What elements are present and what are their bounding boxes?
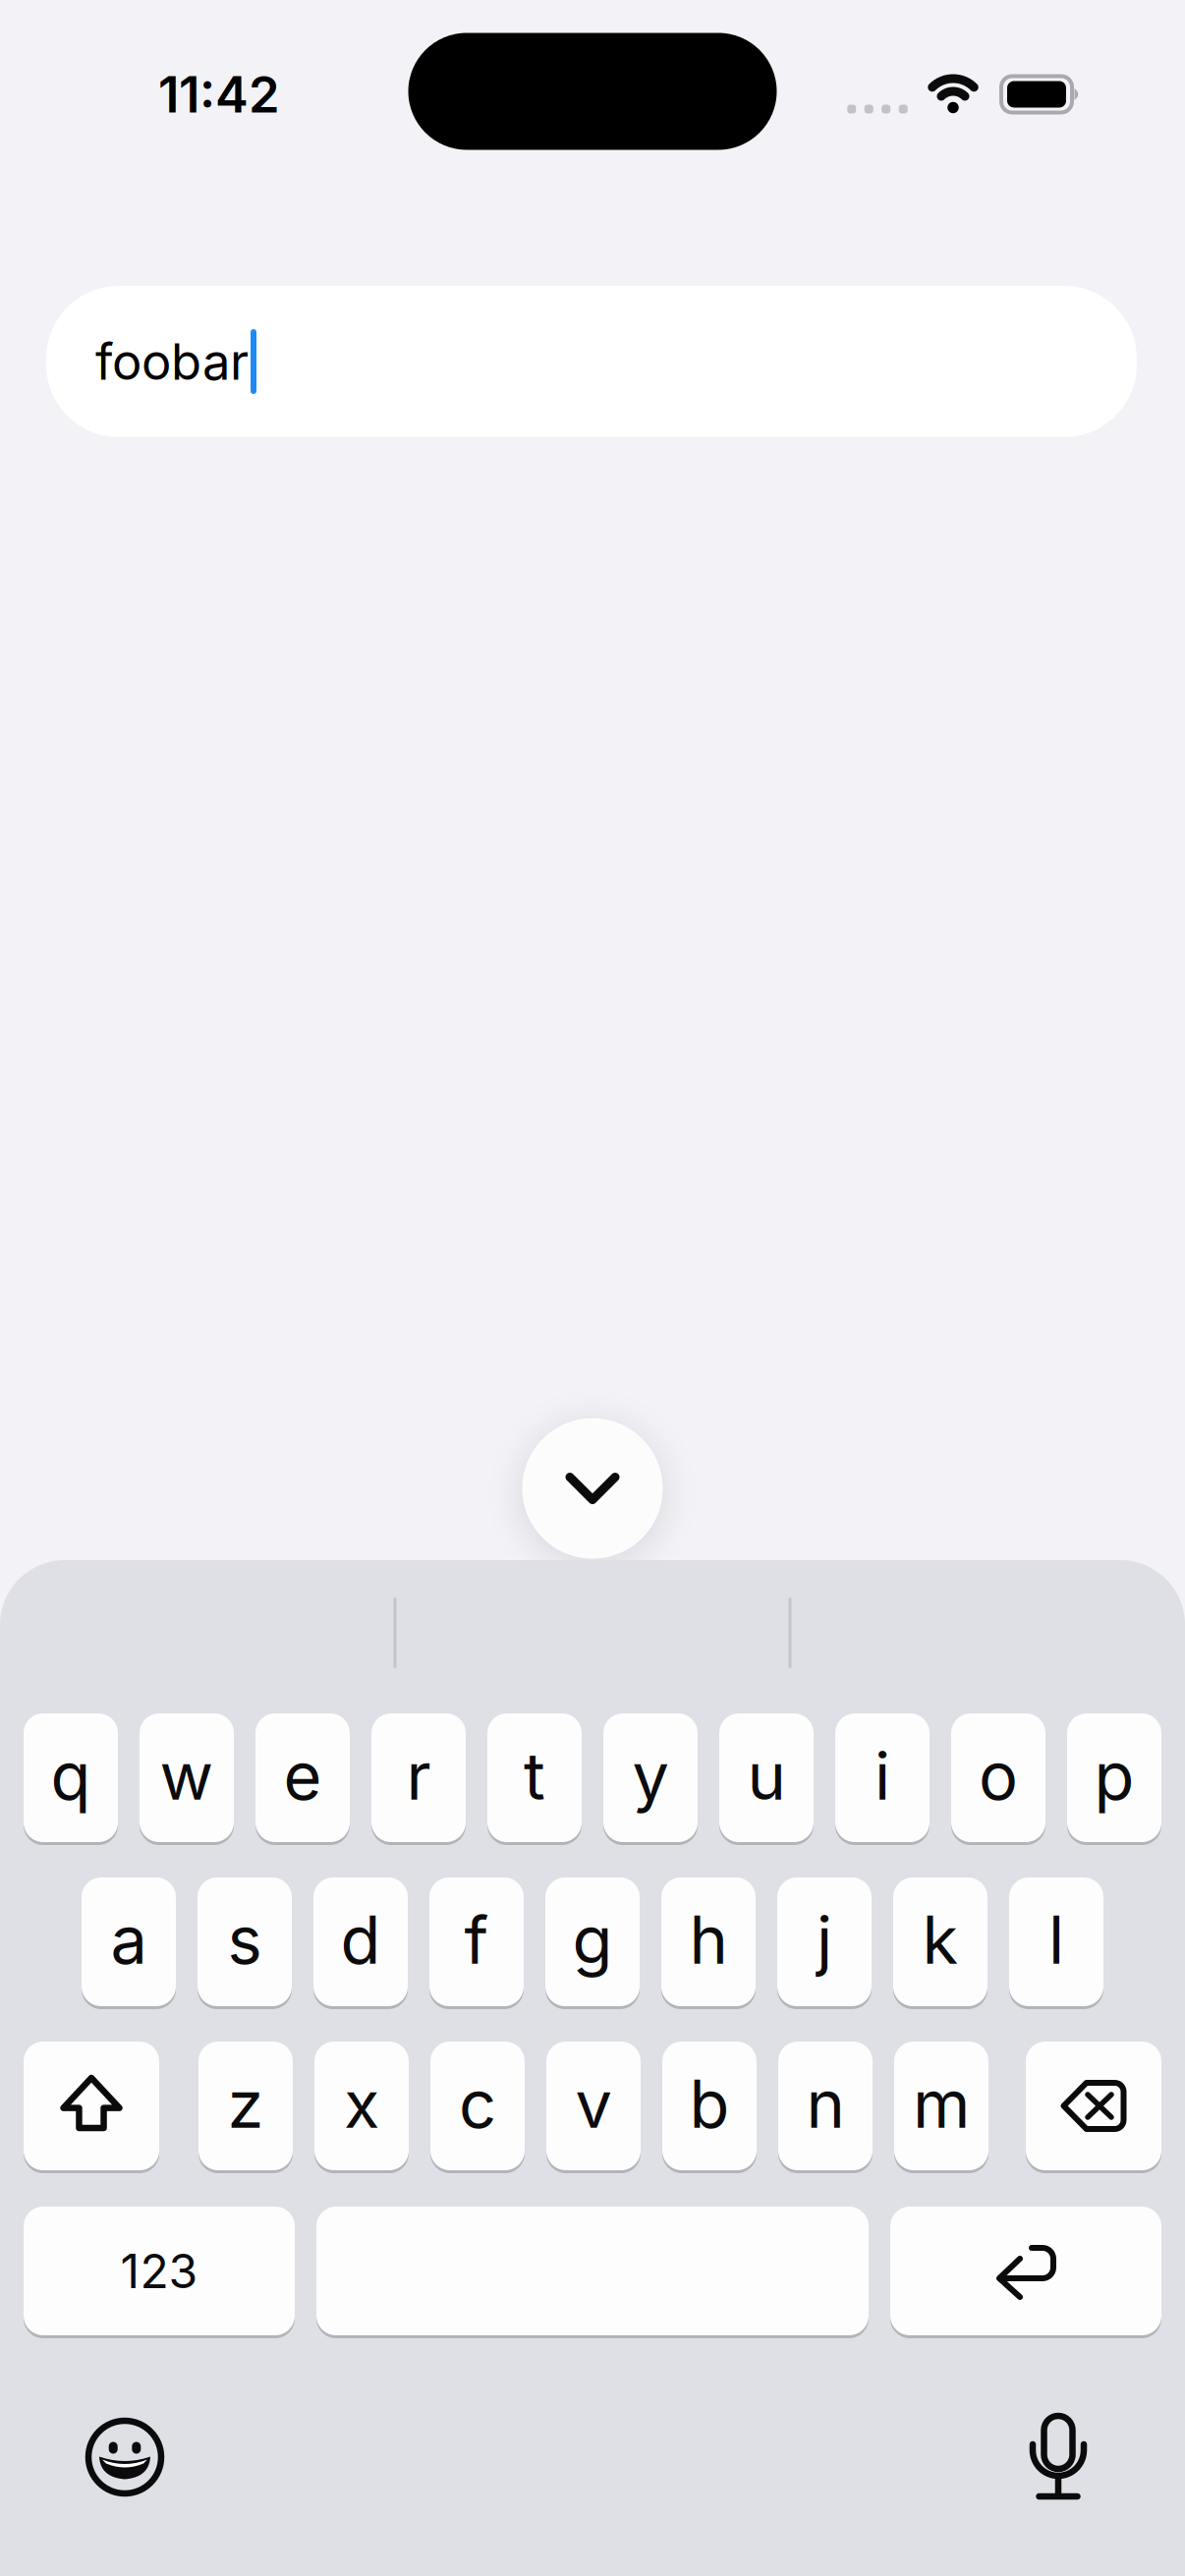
button[interactable]: Delete: [1026, 2040, 1161, 2172]
staticText: foobar: [95, 332, 249, 391]
button[interactable]: i: [835, 1712, 930, 1844]
staticText: x: [344, 2065, 379, 2143]
button[interactable]: Numbers: [24, 2205, 295, 2337]
button[interactable]: j: [777, 1876, 872, 2008]
button[interactable]: n: [778, 2040, 873, 2172]
button[interactable]: Shift: [24, 2040, 159, 2172]
button[interactable]: t: [487, 1712, 582, 1844]
button[interactable]: space: [316, 2205, 869, 2337]
staticText: u: [747, 1737, 786, 1814]
button[interactable]: r: [371, 1712, 466, 1844]
staticText: y: [632, 1737, 669, 1814]
staticText: o: [979, 1737, 1018, 1814]
staticText: i: [875, 1737, 890, 1814]
button[interactable]: Return: [890, 2205, 1161, 2337]
button[interactable]: s: [197, 1876, 292, 2008]
staticText: v: [575, 2065, 612, 2143]
button[interactable]: g: [545, 1876, 640, 2008]
button[interactable]: x: [314, 2040, 409, 2172]
staticText: e: [283, 1737, 322, 1814]
button[interactable]: d: [313, 1876, 408, 2008]
staticText: j: [817, 1901, 832, 1978]
staticText: h: [689, 1901, 728, 1978]
staticText: s: [227, 1901, 262, 1978]
staticText: m: [913, 2065, 970, 2143]
staticText: n: [806, 2065, 845, 2143]
button[interactable]: e: [255, 1712, 350, 1844]
button[interactable]: w: [140, 1712, 234, 1844]
staticText: q: [51, 1737, 91, 1814]
staticText: l: [1048, 1901, 1064, 1978]
button[interactable]: l: [1009, 1876, 1103, 2008]
staticText: 11:42: [158, 65, 280, 124]
staticText: a: [111, 1901, 147, 1978]
staticText: k: [922, 1901, 959, 1978]
staticText: f: [464, 1901, 489, 1978]
staticText: c: [459, 2065, 496, 2143]
button[interactable]: Dictate: [1009, 2407, 1107, 2505]
button[interactable]: h: [661, 1876, 756, 2008]
button[interactable]: b: [662, 2040, 757, 2172]
staticText: p: [1094, 1737, 1134, 1814]
button[interactable]: m: [894, 2040, 988, 2172]
button[interactable]: o: [951, 1712, 1045, 1844]
staticText: w: [160, 1737, 214, 1814]
button[interactable]: z: [198, 2040, 293, 2172]
staticText: z: [227, 2065, 264, 2143]
button[interactable]: Dismiss Keyboard: [522, 1418, 663, 1559]
button[interactable]: k: [893, 1876, 987, 2008]
button[interactable]: v: [546, 2040, 641, 2172]
button[interactable]: Emoji: [76, 2408, 174, 2506]
staticText: g: [572, 1901, 613, 1978]
staticText: d: [340, 1901, 381, 1978]
staticText: t: [524, 1737, 545, 1814]
staticText: b: [689, 2065, 730, 2143]
button[interactable]: u: [719, 1712, 814, 1844]
button[interactable]: a: [82, 1876, 176, 2008]
button[interactable]: y: [603, 1712, 698, 1844]
button[interactable]: c: [430, 2040, 525, 2172]
button[interactable]: Text field, foobar: [46, 286, 1137, 437]
button[interactable]: f: [429, 1876, 524, 2008]
staticText: r: [406, 1737, 431, 1814]
button[interactable]: q: [24, 1712, 118, 1844]
button[interactable]: p: [1067, 1712, 1161, 1844]
staticText: 123: [120, 2243, 198, 2299]
